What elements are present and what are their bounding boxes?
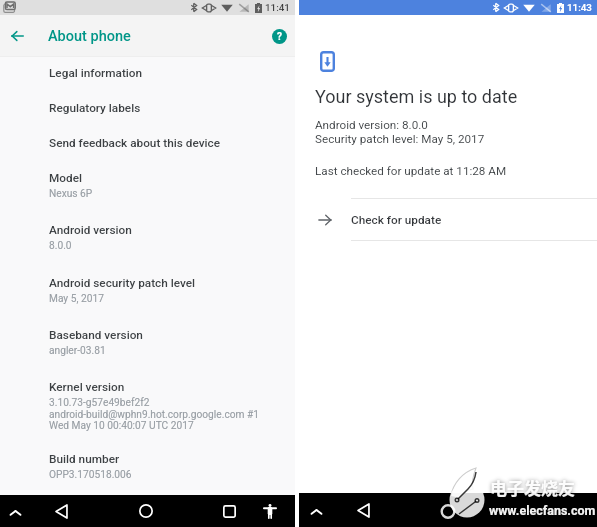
staticText: Last checked for update at 11:28 AM bbox=[315, 164, 507, 178]
button[interactable]: Kernel version bbox=[0, 376, 295, 429]
button[interactable]: Android security patch level bbox=[0, 272, 295, 302]
button[interactable]: Baseband version bbox=[0, 324, 295, 354]
button[interactable]: Recents bbox=[216, 498, 242, 524]
staticText: OPP3.170518.006 bbox=[49, 469, 132, 481]
staticText: ? bbox=[277, 31, 282, 43]
button[interactable]: Model bbox=[0, 167, 295, 197]
staticText: Android security patch level bbox=[49, 276, 196, 290]
staticText: 11:43 bbox=[567, 2, 592, 13]
staticText: About phone bbox=[48, 28, 131, 45]
button[interactable]: Send feedback about this device bbox=[0, 132, 295, 150]
staticText: 电子发烧友 bbox=[490, 475, 575, 500]
button[interactable]: Regulatory labels bbox=[0, 97, 295, 115]
staticText: Security patch level: May 5, 2017 bbox=[315, 132, 485, 146]
button[interactable]: Hide keyboard bbox=[303, 497, 329, 523]
staticText: Your system is up to date bbox=[315, 86, 518, 107]
staticText: angler-03.81 bbox=[49, 345, 106, 357]
button[interactable]: Accessibility bbox=[257, 498, 283, 524]
button[interactable]: Build number bbox=[0, 448, 295, 478]
staticText: Check for update bbox=[351, 213, 442, 227]
button[interactable]: Legal information bbox=[0, 62, 295, 80]
button[interactable]: Back bbox=[350, 497, 376, 523]
staticText: 11:41 bbox=[265, 2, 290, 13]
staticText: Android version bbox=[49, 223, 132, 237]
staticText: android-build@wphn9.hot.corp.google.com … bbox=[49, 409, 259, 421]
staticText: Android version: 8.0.0 bbox=[315, 118, 428, 132]
staticText: www.elecfans.com bbox=[489, 503, 596, 518]
button[interactable]: Hide keyboard bbox=[2, 498, 28, 524]
staticText: 8.0.0 bbox=[49, 240, 72, 252]
button[interactable]: Android version bbox=[0, 219, 295, 249]
button[interactable]: Check for update bbox=[299, 199, 597, 240]
staticText: Baseband version bbox=[49, 328, 143, 342]
staticText: Legal information bbox=[49, 66, 143, 80]
staticText: Kernel version bbox=[49, 380, 125, 394]
staticText: Model bbox=[49, 171, 82, 185]
staticText: Build number bbox=[49, 452, 120, 466]
staticText: Send feedback about this device bbox=[49, 136, 220, 150]
staticText: May 5, 2017 bbox=[49, 293, 104, 305]
staticText: Regulatory labels bbox=[49, 101, 141, 115]
button[interactable]: Help bbox=[267, 24, 291, 48]
staticText: Wed May 10 00:40:07 UTC 2017 bbox=[49, 420, 194, 432]
button[interactable]: Back bbox=[48, 498, 74, 524]
button[interactable]: Home bbox=[133, 498, 159, 524]
staticText: Nexus 6P bbox=[49, 188, 93, 200]
button[interactable]: Navigate up bbox=[4, 23, 30, 49]
staticText: 3.10.73-g57e49bef2f2 bbox=[49, 397, 150, 409]
